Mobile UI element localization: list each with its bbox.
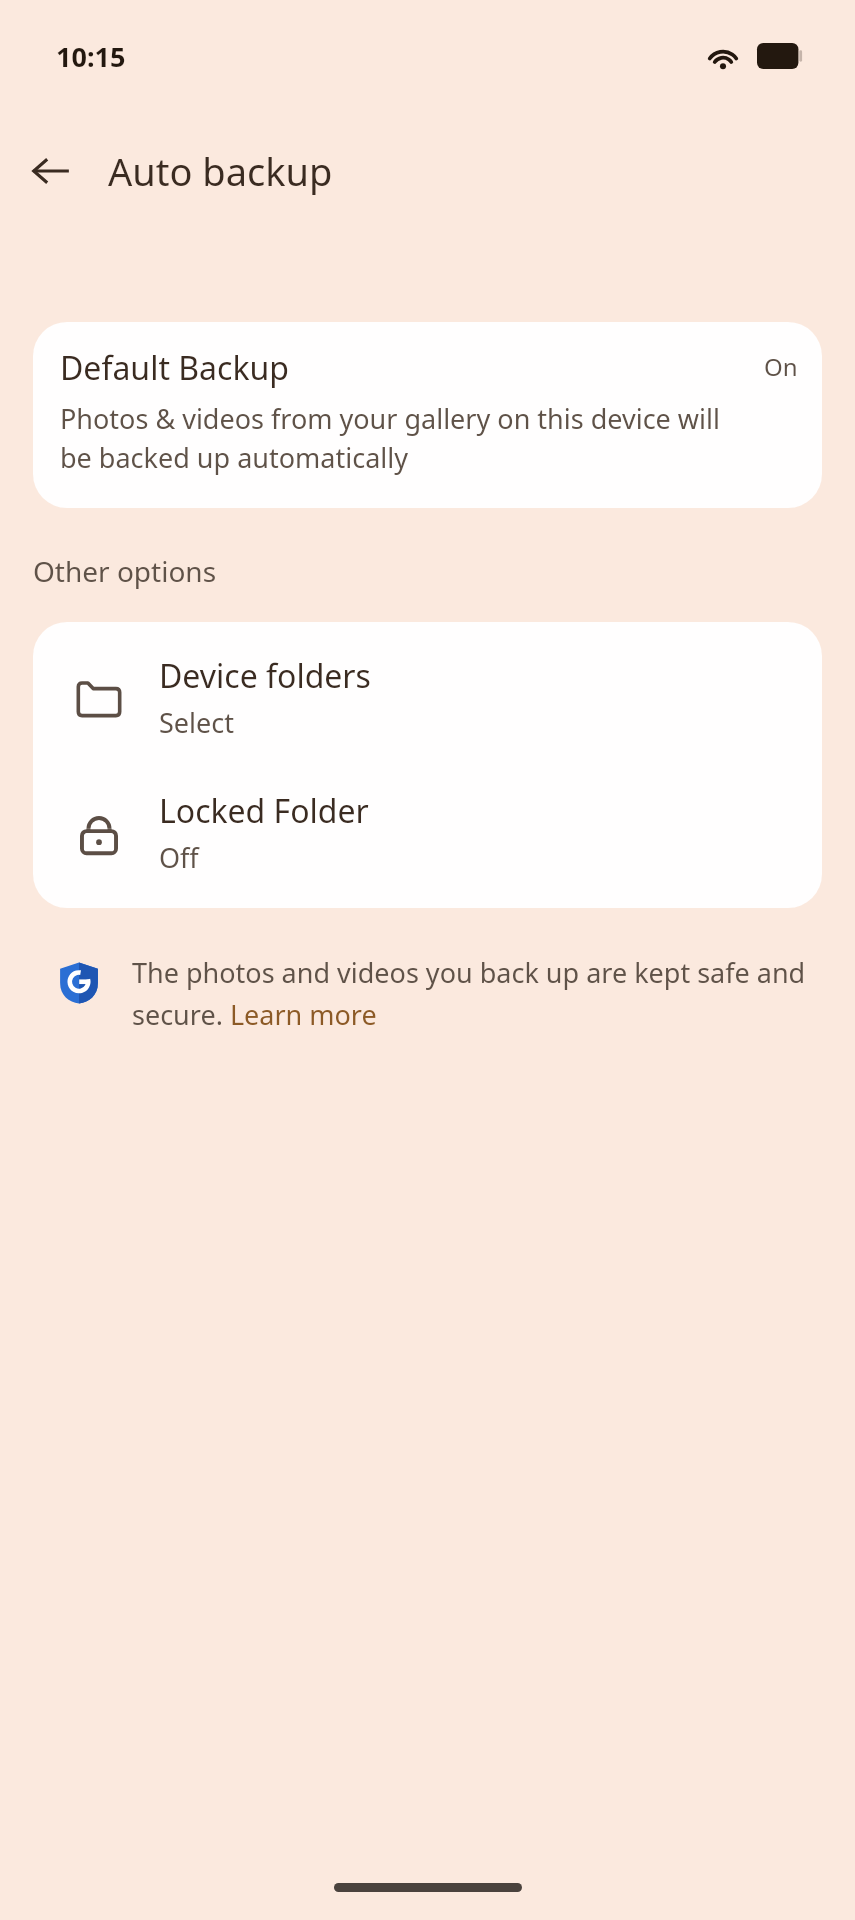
staticText: Off bbox=[159, 839, 199, 876]
staticText: On bbox=[764, 350, 798, 383]
staticText: Other options bbox=[33, 552, 217, 590]
staticText: Default Backup bbox=[60, 346, 289, 390]
staticText: Photos & videos from your gallery on thi… bbox=[60, 400, 739, 476]
button[interactable]: Locked Folder bbox=[33, 765, 822, 900]
staticText: 10:15 bbox=[56, 38, 126, 75]
staticText: Auto backup bbox=[108, 145, 333, 197]
staticText: Device folders bbox=[159, 654, 371, 698]
staticText: Select bbox=[159, 704, 234, 741]
button[interactable]: Default Backup bbox=[33, 322, 822, 508]
staticText: Locked Folder bbox=[159, 789, 369, 833]
button[interactable]: The photos and videos you back up are ke… bbox=[58, 954, 807, 1033]
button[interactable]: Back bbox=[18, 138, 84, 204]
staticText: The photos and videos you back up are ke… bbox=[132, 954, 807, 1033]
button[interactable]: Device folders bbox=[33, 630, 822, 765]
